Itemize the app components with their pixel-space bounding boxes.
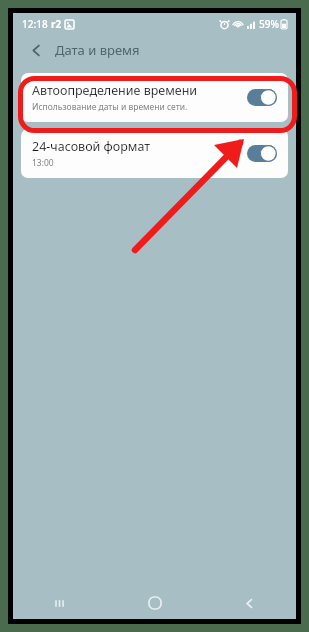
- button[interactable]: Home: [108, 587, 202, 619]
- button[interactable]: Recents: [13, 587, 108, 619]
- button[interactable]: Автоопределение времени: [21, 73, 288, 122]
- button[interactable]: Back: [23, 37, 49, 63]
- staticText: 13:00: [32, 157, 54, 169]
- button[interactable]: Back: [202, 587, 296, 619]
- button[interactable]: Toggle: [247, 145, 277, 162]
- staticText: Дата и время: [55, 41, 140, 59]
- button[interactable]: Toggle: [247, 89, 277, 106]
- staticText: 59%: [259, 17, 279, 31]
- staticText: r2: [51, 17, 62, 31]
- staticText: 24-часовой формат: [32, 138, 151, 155]
- staticText: Автоопределение времени: [32, 82, 198, 99]
- button[interactable]: 24-часовой формат: [21, 129, 288, 178]
- staticText: 12:18: [22, 17, 48, 31]
- staticText: Использование даты и времени сети.: [32, 101, 188, 113]
